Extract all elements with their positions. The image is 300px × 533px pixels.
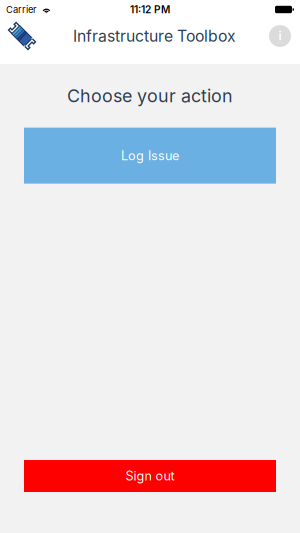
button[interactable]: About — [266, 20, 294, 52]
button[interactable]: Log Issue — [24, 128, 276, 184]
staticText: Sign out — [125, 468, 174, 484]
staticText: Carrier — [6, 4, 37, 15]
staticText: Choose your action — [67, 85, 233, 107]
staticText: i — [278, 29, 281, 43]
staticText: Log Issue — [121, 148, 179, 163]
staticText: Infrastructure Toolbox — [73, 26, 236, 45]
staticText: 11:12 PM — [130, 3, 170, 16]
button[interactable]: Sign out — [24, 460, 276, 492]
